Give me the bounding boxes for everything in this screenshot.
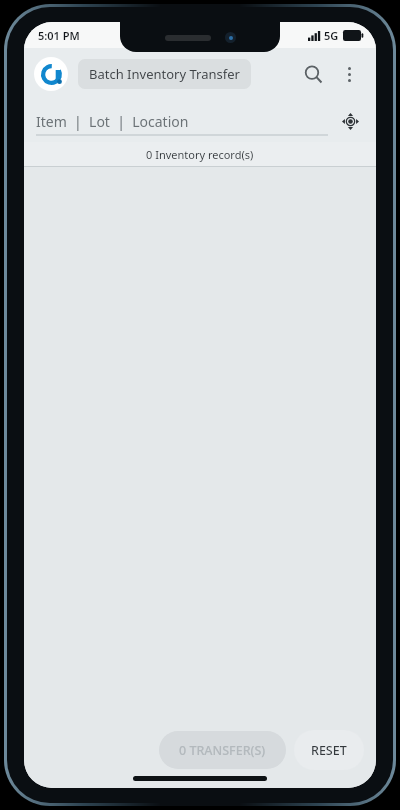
staticText: 5:01 PM [38, 28, 80, 43]
button[interactable]: App logo [34, 57, 68, 91]
button[interactable]: Item | Lot | Location [36, 100, 328, 142]
button[interactable]: Batch Inventory Transfer [78, 59, 251, 89]
staticText: 0 Inventory record(s) [146, 147, 254, 162]
button[interactable]: More options [332, 57, 366, 91]
staticText: Batch Inventory Transfer [89, 65, 240, 83]
button[interactable]: RESET [294, 730, 364, 770]
button[interactable]: Scan or move [334, 105, 366, 137]
button[interactable]: Search [294, 55, 332, 93]
staticText: RESET [311, 742, 347, 759]
staticText: 5G [324, 28, 339, 43]
button[interactable]: 0 TRANSFER(S) [159, 731, 286, 769]
staticText: 0 TRANSFER(S) [179, 742, 266, 759]
staticText: Item | Lot | Location [36, 112, 189, 131]
